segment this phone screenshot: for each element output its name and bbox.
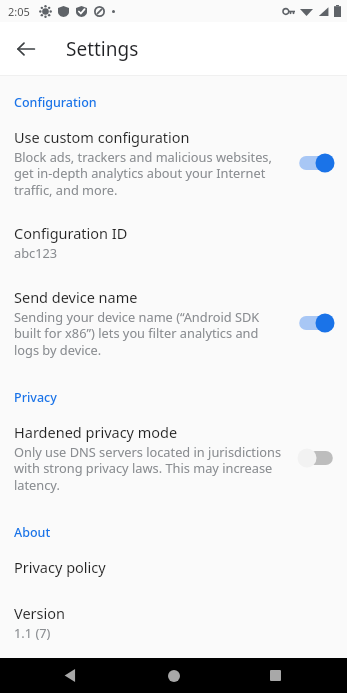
button[interactable]: On bbox=[295, 149, 337, 177]
staticText: Send device name bbox=[14, 287, 138, 307]
staticText: Privacy bbox=[14, 389, 57, 406]
button[interactable]: Back bbox=[6, 29, 46, 69]
staticText: Configuration ID bbox=[14, 223, 128, 243]
staticText: Use custom configuration bbox=[14, 127, 190, 147]
button[interactable]: On bbox=[295, 309, 337, 337]
staticText: abc123 bbox=[14, 244, 58, 261]
staticText: Hardened privacy mode bbox=[14, 422, 178, 442]
staticText: Settings bbox=[66, 36, 139, 62]
button[interactable]: Back bbox=[50, 658, 90, 693]
button[interactable]: Use custom configuration bbox=[0, 113, 347, 209]
button[interactable]: Version bbox=[0, 589, 347, 653]
button[interactable]: Recents bbox=[255, 658, 295, 693]
button[interactable]: Home bbox=[154, 658, 194, 693]
staticText: Privacy policy bbox=[14, 557, 106, 577]
staticText: Configuration bbox=[14, 94, 97, 111]
staticText: Sending your device name (“Android SDK b… bbox=[14, 308, 285, 359]
button[interactable]: Send device name bbox=[0, 273, 347, 369]
button[interactable]: Privacy policy bbox=[0, 543, 347, 589]
staticText: 1.1 (7) bbox=[14, 624, 51, 641]
staticText: 2:05 bbox=[8, 4, 30, 19]
staticText: About bbox=[14, 524, 51, 541]
staticText: Only use DNS servers located in jurisdic… bbox=[14, 443, 285, 494]
staticText: Version bbox=[14, 603, 65, 623]
button[interactable]: Hardened privacy mode bbox=[0, 408, 347, 504]
button[interactable]: Off bbox=[295, 444, 337, 472]
button[interactable]: Configuration ID bbox=[0, 209, 347, 273]
staticText: Block ads, trackers and malicious websit… bbox=[14, 148, 285, 199]
